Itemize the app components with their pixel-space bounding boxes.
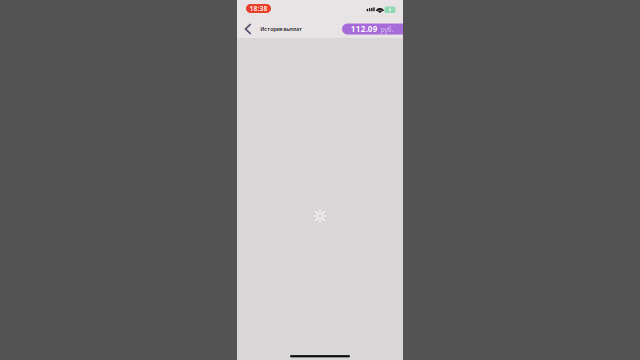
staticText: 18:38 bbox=[249, 4, 267, 13]
button[interactable]: Back bbox=[237, 21, 260, 37]
staticText: руб. bbox=[380, 25, 393, 34]
staticText: 112.09 bbox=[351, 24, 378, 34]
staticText: История выплат bbox=[260, 25, 302, 33]
button[interactable]: 112.09 bbox=[335, 23, 403, 34]
